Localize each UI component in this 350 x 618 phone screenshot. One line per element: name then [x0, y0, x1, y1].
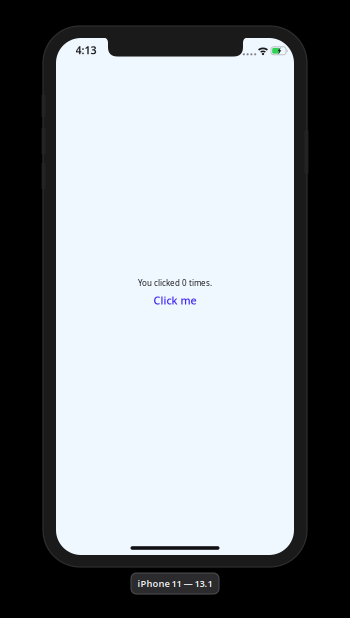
staticText: 4:13: [75, 43, 96, 57]
staticText: Click me: [153, 293, 196, 307]
staticText: iPhone 11 — 13.1: [137, 577, 212, 590]
button[interactable]: Click me: [153, 293, 196, 307]
staticText: You clicked 0 times.: [138, 278, 212, 288]
